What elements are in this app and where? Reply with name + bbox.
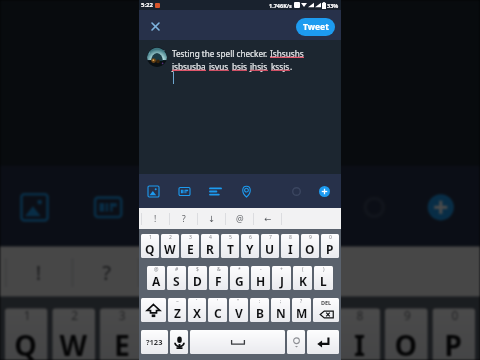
button[interactable]: 3 bbox=[100, 308, 143, 360]
staticText: @ bbox=[230, 258, 249, 287]
staticText: ' bbox=[217, 298, 219, 305]
button[interactable]: $ bbox=[188, 266, 207, 290]
button[interactable]: ↓ bbox=[198, 208, 225, 229]
button[interactable]: @ bbox=[147, 266, 165, 290]
staticText: R bbox=[159, 325, 178, 360]
staticText: ? bbox=[182, 213, 186, 225]
button[interactable]: @ bbox=[226, 208, 253, 229]
button[interactable]: ? bbox=[292, 298, 311, 322]
button[interactable]: 0 bbox=[321, 234, 339, 258]
button[interactable]: ↓ bbox=[140, 246, 204, 296]
button[interactable]: Add photo bbox=[14, 187, 52, 225]
button[interactable]: Settings bbox=[287, 330, 305, 354]
button[interactable]: 5 bbox=[221, 234, 239, 258]
staticText: U bbox=[265, 241, 275, 257]
button[interactable]: 1 bbox=[141, 234, 159, 258]
button[interactable]: ( bbox=[293, 266, 312, 290]
staticText: # bbox=[175, 266, 179, 273]
button[interactable]: Delete bbox=[313, 298, 339, 322]
button[interactable]: 8 bbox=[281, 234, 299, 258]
button[interactable]: Voice input bbox=[170, 330, 188, 354]
button[interactable]: ' bbox=[208, 298, 227, 322]
button[interactable]: ! bbox=[7, 246, 71, 296]
button[interactable]: 6 bbox=[241, 234, 259, 258]
button[interactable]: ? bbox=[170, 208, 197, 229]
button[interactable]: ! bbox=[142, 208, 169, 229]
staticText: * bbox=[238, 266, 241, 273]
button[interactable]: + bbox=[272, 266, 291, 290]
button[interactable]: 2 bbox=[161, 234, 179, 258]
button[interactable]: 7 bbox=[290, 308, 333, 360]
button[interactable]: " bbox=[229, 298, 248, 322]
staticText: 3 bbox=[119, 308, 126, 325]
staticText: 6 bbox=[249, 234, 252, 241]
button[interactable]: * bbox=[230, 266, 249, 290]
button[interactable]: ) bbox=[314, 266, 333, 290]
staticText: Tweet bbox=[303, 21, 329, 33]
staticText: M bbox=[296, 305, 308, 321]
staticText: V bbox=[235, 305, 243, 321]
button[interactable]: @ bbox=[207, 246, 271, 296]
button[interactable]: 4 bbox=[201, 234, 219, 258]
staticText: 7 bbox=[309, 308, 316, 325]
button[interactable]: 8 bbox=[337, 308, 380, 360]
staticText: ) bbox=[323, 266, 325, 273]
staticText: ← bbox=[264, 214, 272, 224]
staticText: Q bbox=[14, 325, 38, 360]
button[interactable]: 6 bbox=[242, 308, 285, 360]
button[interactable]: 1 bbox=[5, 308, 48, 360]
button[interactable]: 7 bbox=[261, 234, 279, 258]
button[interactable]: 9 bbox=[301, 234, 319, 258]
staticText: Y bbox=[246, 241, 254, 257]
button[interactable]: ? bbox=[74, 246, 138, 296]
staticText: Q bbox=[145, 241, 155, 257]
button[interactable]: Tweet bbox=[296, 18, 335, 36]
button[interactable]: ` bbox=[188, 298, 206, 322]
button[interactable]: 2 bbox=[52, 308, 95, 360]
staticText: Z bbox=[174, 305, 181, 321]
staticText: 2 bbox=[71, 308, 78, 325]
button[interactable]: ~ bbox=[168, 298, 186, 322]
staticText: E bbox=[187, 241, 194, 257]
button[interactable]: ← bbox=[273, 246, 337, 296]
staticText: 6 bbox=[261, 308, 268, 325]
button[interactable]: : bbox=[250, 298, 269, 322]
button[interactable]: ← bbox=[254, 208, 281, 229]
button[interactable]: # bbox=[167, 266, 186, 290]
button[interactable]: Space bbox=[190, 330, 285, 354]
button[interactable]: - bbox=[251, 266, 270, 290]
staticText: ( bbox=[302, 266, 304, 273]
staticText: 9 bbox=[309, 234, 312, 241]
button[interactable]: Add GIF bbox=[88, 187, 126, 225]
staticText: E bbox=[114, 325, 131, 360]
button[interactable]: 9 bbox=[385, 308, 428, 360]
staticText: 7 bbox=[269, 234, 272, 241]
button[interactable]: & bbox=[209, 266, 228, 290]
button[interactable]: Add another tweet bbox=[316, 183, 332, 199]
button[interactable]: Add GIF bbox=[176, 183, 192, 199]
button[interactable]: ?123 bbox=[141, 330, 168, 354]
button[interactable]: Character count bbox=[288, 183, 304, 199]
button[interactable]: 4 bbox=[147, 308, 190, 360]
button[interactable]: Shift bbox=[141, 298, 166, 322]
staticText: 5 bbox=[214, 308, 221, 325]
staticText: A bbox=[152, 273, 161, 289]
button[interactable]: 3 bbox=[181, 234, 199, 258]
staticText: W bbox=[59, 325, 88, 360]
button[interactable]: Add poll bbox=[162, 187, 200, 225]
button[interactable]: Add location bbox=[235, 187, 273, 225]
staticText: I bbox=[288, 241, 293, 257]
button[interactable]: Add photo bbox=[145, 183, 161, 199]
button[interactable]: Close bbox=[147, 18, 163, 34]
staticText: 5 bbox=[229, 234, 232, 241]
button[interactable]: Add poll bbox=[207, 183, 223, 199]
staticText: ; bbox=[280, 298, 282, 305]
staticText: T bbox=[227, 241, 234, 257]
button[interactable]: Enter bbox=[307, 330, 339, 354]
button[interactable]: ; bbox=[271, 298, 290, 322]
button[interactable]: 5 bbox=[195, 308, 238, 360]
button[interactable]: 0 bbox=[432, 308, 475, 360]
button[interactable]: Add location bbox=[238, 183, 254, 199]
button[interactable]: Add another tweet bbox=[421, 187, 459, 225]
